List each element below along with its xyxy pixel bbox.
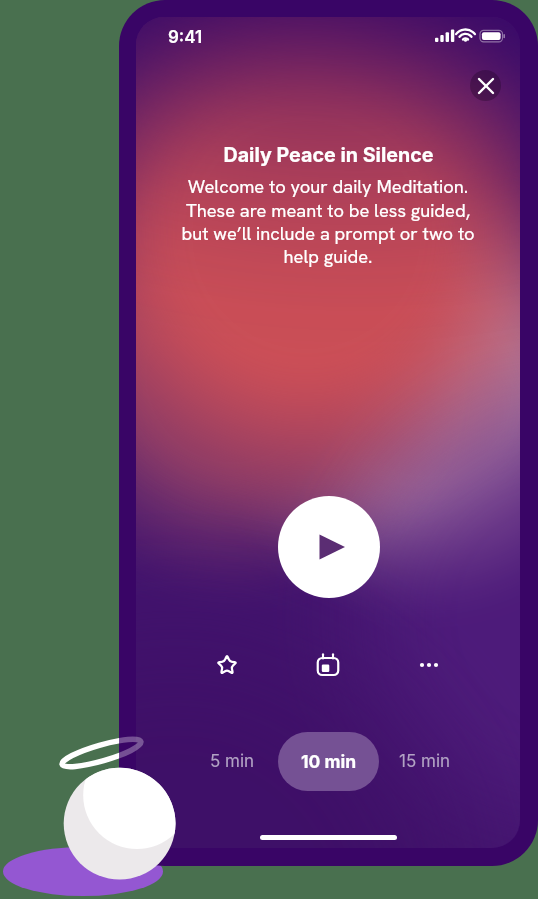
staticText: Daily Peace in Silence [223, 143, 434, 167]
staticText: 5 min [210, 751, 255, 772]
button[interactable]: Schedule [312, 649, 344, 681]
button[interactable]: 5 min [187, 732, 278, 791]
staticText: 10 min [301, 751, 357, 772]
button[interactable]: 10 min [278, 732, 379, 791]
button[interactable]: Close [470, 70, 501, 101]
button[interactable]: Favorite [211, 649, 243, 681]
staticText: 9:41 [168, 27, 203, 48]
button[interactable]: 15 min [379, 732, 470, 791]
staticText: 15 min [399, 751, 451, 772]
button[interactable]: Play [278, 496, 380, 598]
button[interactable]: More options [413, 649, 445, 681]
staticText: Welcome to your daily Meditation. These … [181, 175, 475, 268]
